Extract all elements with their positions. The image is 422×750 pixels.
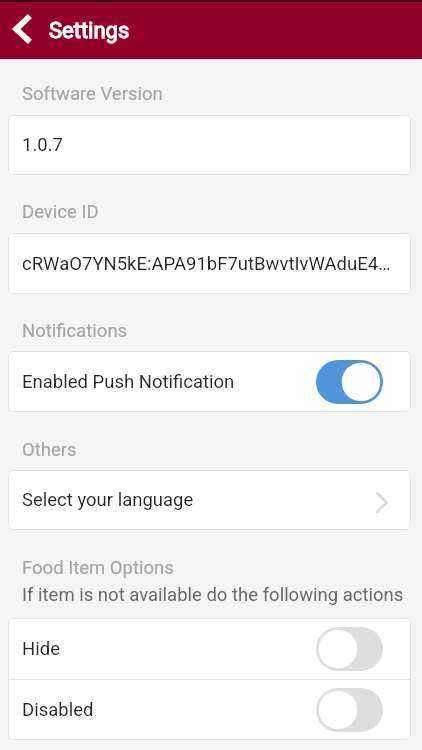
- staticText: Select your language: [22, 489, 376, 511]
- staticText: Others: [22, 439, 77, 461]
- button[interactable]: Hide, off: [316, 627, 383, 671]
- button[interactable]: Enabled Push Notification, on: [316, 360, 383, 404]
- button[interactable]: Navigate back: [0, 0, 45, 59]
- button[interactable]: Enabled Push Notification: [8, 351, 411, 412]
- staticText: Settings: [49, 18, 130, 44]
- button[interactable]: Disabled: [8, 680, 411, 740]
- button[interactable]: cRWaO7YN5kE:APA91bF7utBwvtIvWAduE4…: [8, 233, 411, 294]
- staticText: Notifications: [22, 320, 128, 342]
- staticText: Hide: [22, 638, 316, 660]
- button[interactable]: Select your language: [8, 470, 411, 530]
- button[interactable]: Hide: [8, 618, 411, 679]
- staticText: Food Item Options: [22, 557, 174, 579]
- staticText: Enabled Push Notification: [22, 371, 316, 393]
- staticText: Device ID: [22, 201, 99, 223]
- staticText: Software Version: [22, 83, 163, 105]
- staticText: If item is not available do the followin…: [22, 584, 404, 606]
- staticText: 1.0.7: [22, 134, 63, 156]
- staticText: Disabled: [22, 699, 316, 721]
- button[interactable]: Disabled, off: [316, 688, 383, 732]
- staticText: cRWaO7YN5kE:APA91bF7utBwvtIvWAduE4…: [22, 253, 391, 275]
- button[interactable]: 1.0.7: [8, 115, 411, 175]
